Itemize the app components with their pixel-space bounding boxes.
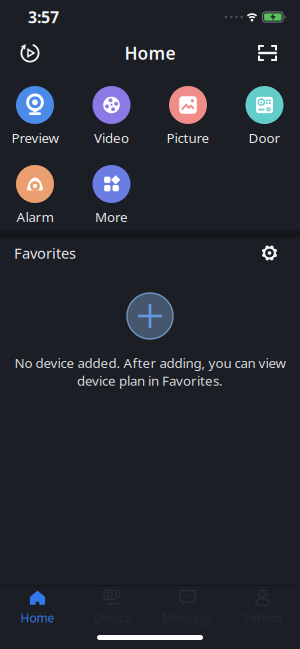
staticText: More <box>95 208 128 226</box>
button[interactable]: Preview <box>5 86 65 143</box>
button[interactable] <box>127 293 173 339</box>
staticText: Device <box>93 610 131 626</box>
button[interactable]: Video <box>81 86 141 143</box>
staticText: device plan in Favorites. <box>77 372 223 389</box>
button[interactable]: Alarm <box>5 165 65 222</box>
staticText: Message <box>162 610 213 626</box>
staticText: Door <box>248 129 280 147</box>
staticText: Favorites <box>14 243 76 263</box>
staticText: Home <box>20 610 54 626</box>
button[interactable] <box>258 45 277 61</box>
button[interactable] <box>261 244 278 261</box>
button[interactable]: Message <box>150 589 225 626</box>
staticText: Setting <box>243 610 282 626</box>
button[interactable]: Home <box>0 589 75 626</box>
staticText: 3:57 <box>28 6 59 28</box>
staticText: Home <box>124 41 175 64</box>
button[interactable]: Door <box>234 86 294 143</box>
button[interactable]: Device <box>75 589 150 626</box>
staticText: Preview <box>11 129 58 147</box>
staticText: Picture <box>166 129 209 147</box>
button[interactable] <box>19 42 41 64</box>
button[interactable]: More <box>81 165 141 222</box>
button[interactable]: Setting <box>225 589 300 626</box>
staticText: No device added. After adding, you can v… <box>14 354 285 372</box>
staticText: Alarm <box>16 208 53 226</box>
button[interactable]: Picture <box>158 86 218 143</box>
staticText: Video <box>94 129 129 147</box>
